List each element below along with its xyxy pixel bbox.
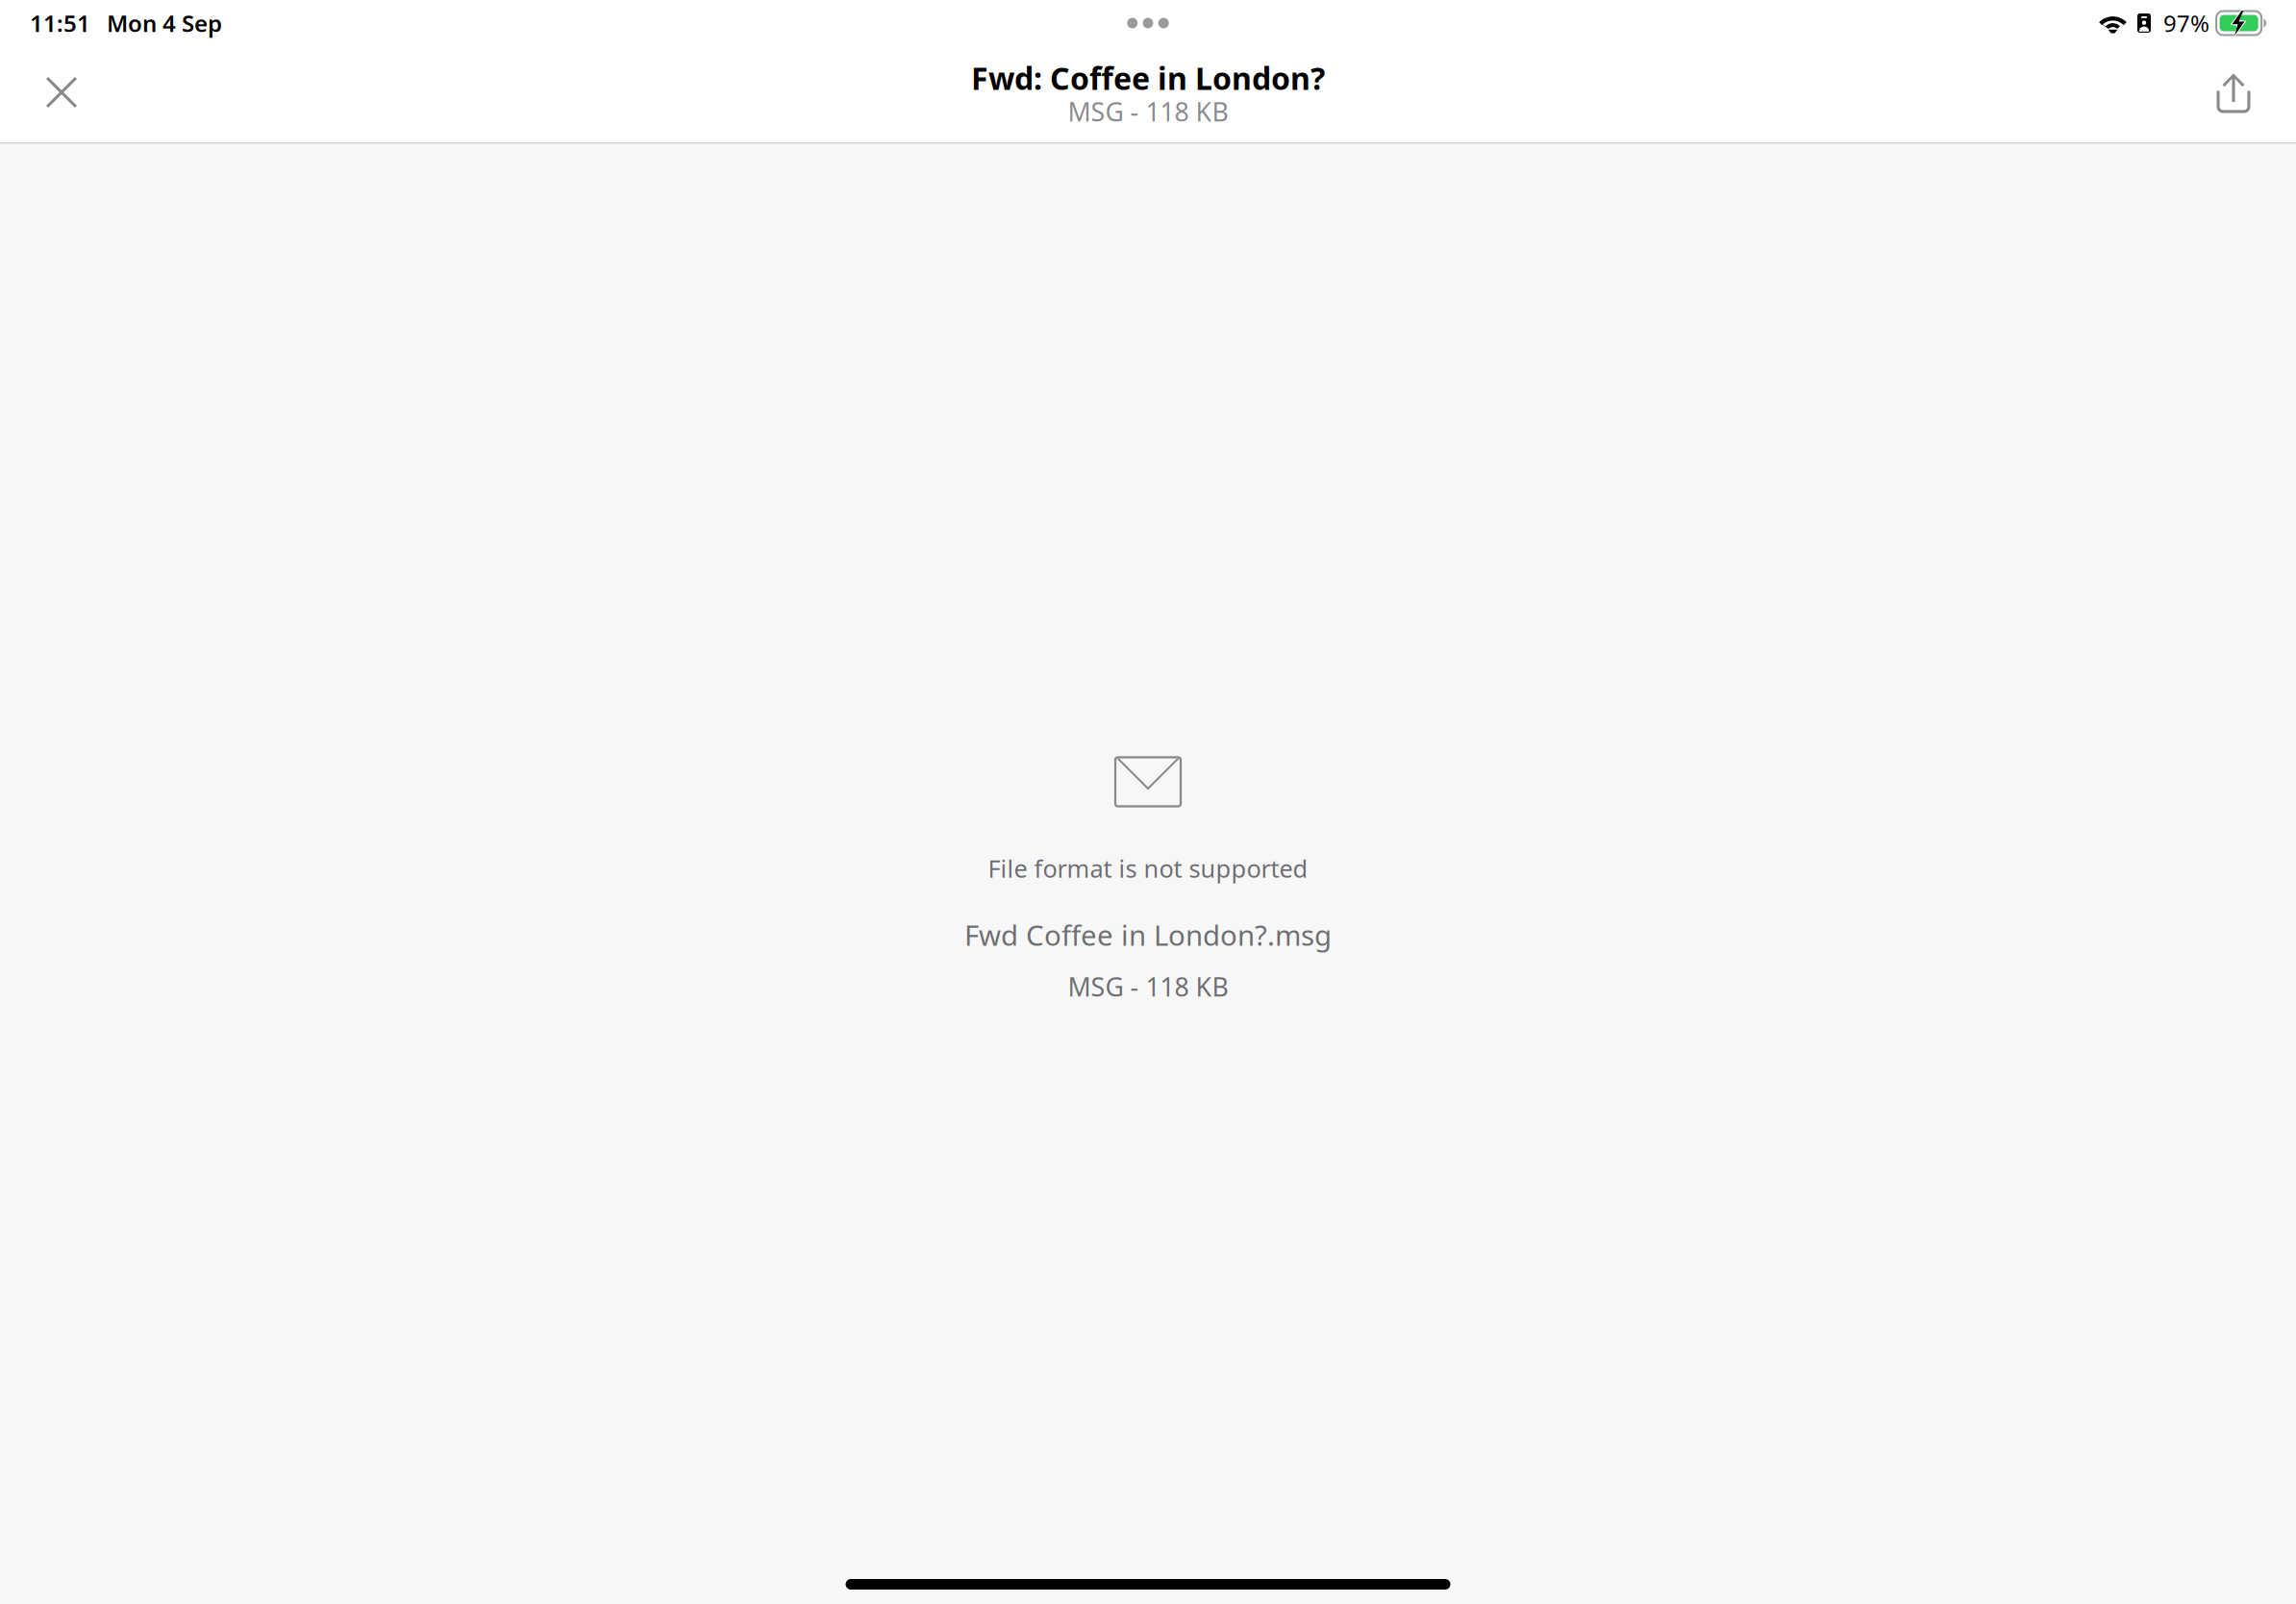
- staticText: Mon 4 Sep: [107, 8, 222, 38]
- staticText: MSG - 118 KB: [1068, 970, 1228, 1004]
- staticText: Fwd: Coffee in London?: [971, 58, 1325, 98]
- button[interactable]: Share: [2197, 57, 2270, 130]
- staticText: 11:51: [30, 8, 90, 38]
- button[interactable]: Close: [25, 56, 98, 129]
- staticText: Fwd Coffee in London?.msg: [964, 916, 1332, 953]
- staticText: 97%: [2163, 8, 2209, 38]
- staticText: File format is not supported: [988, 852, 1308, 885]
- staticText: MSG - 118 KB: [1068, 95, 1228, 129]
